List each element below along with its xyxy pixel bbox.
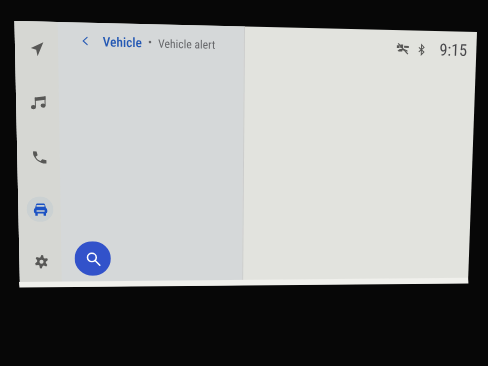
button[interactable]: Navigation bbox=[8, 14, 34, 40]
button[interactable]: Vehicle bbox=[8, 174, 34, 200]
staticText: Vehicle alert bbox=[138, 12, 195, 25]
button[interactable]: Phone bbox=[8, 121, 34, 147]
button[interactable]: Vehicle bbox=[62, 8, 195, 28]
button[interactable]: Search bbox=[54, 220, 90, 256]
button[interactable]: Settings bbox=[8, 228, 34, 254]
staticText: • bbox=[128, 11, 133, 25]
staticText: Vehicle bbox=[84, 11, 123, 26]
button[interactable]: Media bbox=[8, 67, 34, 93]
